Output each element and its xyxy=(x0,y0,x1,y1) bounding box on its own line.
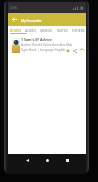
button[interactable]: Recents xyxy=(62,155,73,166)
button[interactable]: OTHERS xyxy=(70,26,86,33)
button[interactable]: NOTES xyxy=(54,26,70,33)
button[interactable]: 1 Sam's EF Advice xyxy=(10,35,84,55)
staticText: BOOKS xyxy=(10,28,22,32)
button[interactable]: VIDEOS xyxy=(38,26,54,33)
staticText: AUDIO xyxy=(25,28,36,32)
staticText: VIDEOS xyxy=(40,28,52,32)
button[interactable]: BOOKS xyxy=(8,26,23,33)
button[interactable]: Back xyxy=(22,155,33,166)
staticText: 1 Sam's EF Advice xyxy=(21,37,52,42)
button[interactable]: Share xyxy=(71,47,78,54)
button[interactable]: Back xyxy=(8,13,21,26)
button[interactable]: Home xyxy=(42,155,53,166)
staticText: NOTES xyxy=(57,28,68,32)
staticText: Author: Ronald Richardson Alex Mak xyxy=(21,43,73,47)
staticText: OTHERS xyxy=(72,28,85,32)
button[interactable]: Favourite xyxy=(64,47,71,54)
staticText: Type: Book | Language: English xyxy=(21,48,66,52)
button[interactable]: AUDIO xyxy=(23,26,38,33)
staticText: My Favourite xyxy=(21,18,42,22)
button[interactable]: Bookmark xyxy=(78,47,85,54)
staticText: 4:06 xyxy=(10,5,18,10)
